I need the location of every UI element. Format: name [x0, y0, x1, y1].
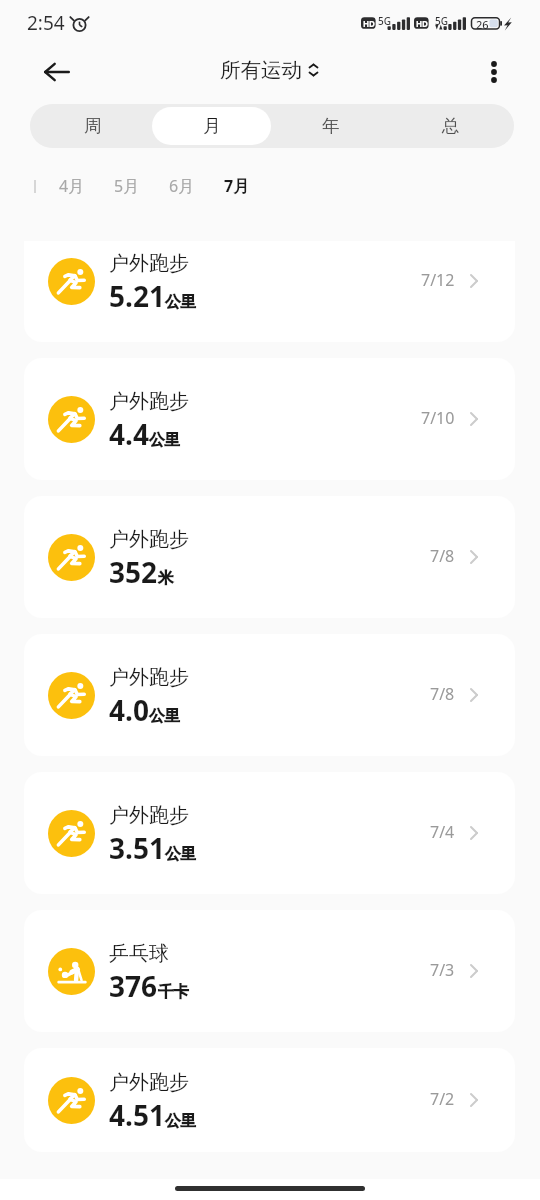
staticText: 4.51 — [109, 1096, 165, 1134]
button[interactable]: 乒乓球 — [24, 910, 515, 1032]
button[interactable]: 周 — [33, 107, 152, 145]
staticText: 5月 — [114, 175, 140, 197]
button[interactable]: 户外跑步 — [24, 496, 515, 618]
staticText: 5G — [378, 14, 391, 28]
button[interactable]: 月 — [152, 107, 271, 145]
staticText: 年 — [322, 115, 340, 137]
button[interactable]: 4月 — [56, 175, 88, 197]
staticText: 3.51 — [109, 829, 165, 867]
staticText: 376 — [109, 967, 158, 1005]
button[interactable]: More options — [479, 57, 509, 87]
staticText: 户外跑步 — [109, 251, 189, 276]
staticText: 公里 — [149, 430, 180, 450]
staticText: 4.4 — [109, 415, 149, 453]
staticText: 公里 — [165, 844, 196, 864]
button[interactable]: 5月 — [111, 175, 143, 197]
staticText: 6月 — [169, 175, 195, 197]
staticText: 米 — [158, 568, 174, 588]
staticText: 5G — [435, 14, 448, 28]
staticText: 月 — [203, 115, 221, 137]
button[interactable]: 户外跑步 — [24, 772, 515, 894]
staticText: 4.0 — [109, 691, 149, 729]
staticText: HD — [363, 18, 375, 29]
staticText: 352 — [109, 553, 158, 591]
button[interactable]: Back — [35, 50, 79, 94]
staticText: 2:54 — [27, 10, 65, 36]
button[interactable]: 户外跑步 — [24, 1048, 515, 1152]
staticText: HD — [416, 18, 428, 29]
staticText: 公里 — [149, 706, 180, 726]
button[interactable]: 7月 — [221, 175, 253, 197]
staticText: 周 — [84, 115, 102, 137]
button[interactable]: 总 — [391, 107, 511, 145]
staticText: 7/8 — [430, 683, 455, 705]
staticText: 7月 — [224, 175, 250, 197]
staticText: 7/10 — [421, 407, 455, 429]
button[interactable]: 户外跑步 — [24, 634, 515, 756]
staticText: 户外跑步 — [109, 803, 189, 828]
staticText: 公里 — [165, 292, 196, 312]
button[interactable]: 6月 — [166, 175, 198, 197]
button[interactable]: 所有运动 — [220, 57, 320, 83]
button[interactable]: 年 — [271, 107, 391, 145]
staticText: 户外跑步 — [109, 665, 189, 690]
staticText: 5.21 — [109, 277, 165, 315]
staticText: 户外跑步 — [109, 1070, 189, 1095]
staticText: 户外跑步 — [109, 527, 189, 552]
staticText: 4月 — [59, 175, 85, 197]
staticText: 总 — [442, 115, 460, 137]
button[interactable]: 户外跑步 — [24, 241, 515, 342]
staticText: 公里 — [165, 1111, 196, 1131]
staticText: 7/8 — [430, 545, 455, 567]
staticText: 7/2 — [430, 1088, 455, 1110]
staticText: 千卡 — [158, 982, 189, 1002]
staticText: 7/12 — [421, 269, 455, 291]
staticText: 乒乓球 — [109, 941, 169, 966]
button[interactable]: 户外跑步 — [24, 358, 515, 480]
staticText: 7/4 — [430, 821, 455, 843]
staticText: 26 — [476, 17, 489, 32]
staticText: 户外跑步 — [109, 389, 189, 414]
staticText: 7/3 — [430, 959, 455, 981]
staticText: 所有运动 — [220, 57, 302, 83]
